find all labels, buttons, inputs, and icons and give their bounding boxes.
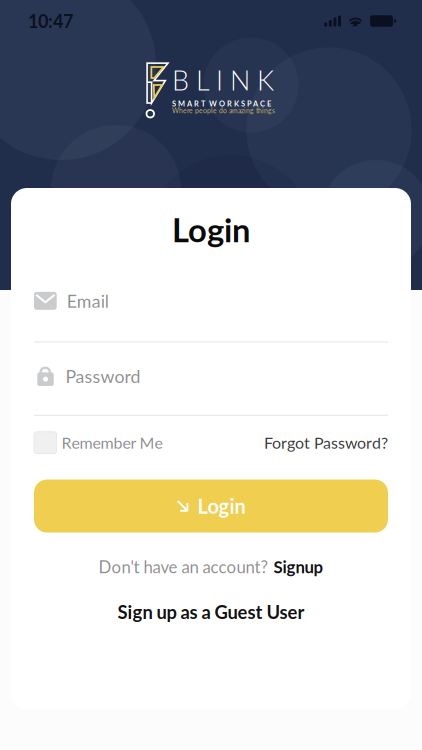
- staticText: Signup: [273, 557, 323, 577]
- staticText: 10:47: [28, 10, 73, 32]
- staticText: Login: [172, 210, 250, 249]
- button[interactable]: Don't have an account?: [98, 557, 323, 577]
- staticText: Password: [65, 365, 140, 387]
- staticText: Sign up as a Guest User: [117, 601, 304, 623]
- staticText: Don't have an account?: [98, 557, 268, 577]
- staticText: B L I N K: [172, 64, 274, 96]
- button[interactable]: Sign up as a Guest User: [117, 601, 304, 623]
- button[interactable]: Login: [34, 480, 388, 533]
- staticText: Where people do amazing things: [172, 106, 275, 115]
- staticText: Email: [67, 290, 109, 311]
- staticText: S M A R T W O R K S P A C E: [172, 99, 271, 108]
- staticText: Login: [197, 494, 245, 518]
- staticText: Remember Me: [61, 433, 162, 452]
- button[interactable]: Remember Me: [34, 432, 162, 454]
- staticText: Forgot Password?: [264, 433, 388, 452]
- button[interactable]: Forgot Password?: [264, 433, 388, 452]
